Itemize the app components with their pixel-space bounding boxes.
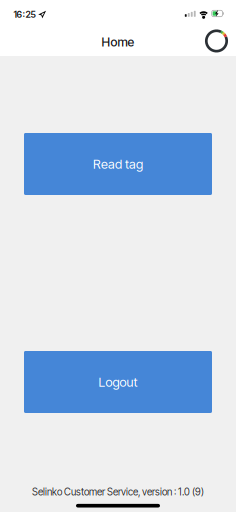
- button[interactable]: Logout: [24, 351, 212, 413]
- staticText: Selinko Customer Service, version : 1.0 …: [32, 486, 204, 498]
- staticText: Logout: [98, 374, 137, 390]
- button[interactable]: Read tag: [24, 133, 212, 195]
- staticText: Home: [101, 34, 134, 49]
- button[interactable]: Status: [201, 25, 232, 56]
- staticText: 16:25: [13, 9, 35, 20]
- staticText: Read tag: [93, 156, 143, 172]
